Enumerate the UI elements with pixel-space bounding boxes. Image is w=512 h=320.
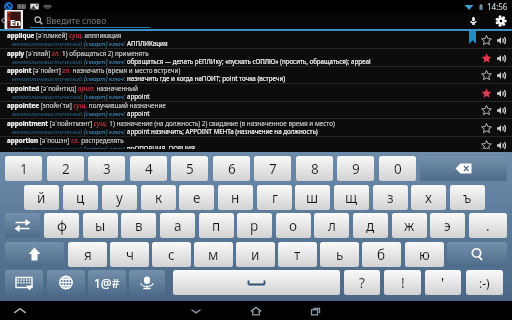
button[interactable]: appoint [ə`пойнт] гл. назначить (время и…: [0, 66, 512, 84]
staticText: мнемолингвистический (смарт) ключ: назна…: [12, 74, 286, 82]
staticText: щ: [345, 189, 358, 207]
button[interactable]: ь: [320, 242, 359, 267]
button[interactable]: Add to favourites: [479, 68, 494, 83]
button[interactable]: 2: [47, 156, 84, 181]
button[interactable]: ъ: [450, 185, 485, 210]
button[interactable]: м: [194, 242, 233, 267]
button[interactable]: 8: [296, 156, 333, 181]
button[interactable]: Change language: [47, 270, 85, 295]
button[interactable]: Add to favourites: [479, 138, 494, 149]
staticText: 6: [228, 160, 236, 178]
button[interactable]: 0: [379, 156, 416, 181]
staticText: appointment [ə`пойнтмэнт] сущ. 1) назнач…: [7, 119, 335, 128]
button[interactable]: щ: [334, 185, 369, 210]
staticText: г: [272, 189, 278, 207]
button[interactable]: 7: [254, 156, 291, 181]
button[interactable]: 1@#: [88, 270, 126, 295]
button[interactable]: е: [179, 185, 214, 210]
button[interactable]: р: [237, 213, 272, 238]
button[interactable]: Add to favourites: [479, 103, 494, 118]
button[interactable]: й: [24, 185, 59, 210]
button[interactable]: п: [199, 213, 234, 238]
button[interactable]: 5: [171, 156, 208, 181]
button[interactable]: х: [411, 185, 446, 210]
button[interactable]: Shift: [5, 242, 64, 267]
button[interactable]: ц: [63, 185, 98, 210]
button[interactable]: 4: [130, 156, 167, 181]
button[interactable]: у: [102, 185, 137, 210]
button[interactable]: д: [353, 213, 388, 238]
button[interactable]: Pronounce word: [494, 138, 509, 149]
button[interactable]: 6: [213, 156, 250, 181]
staticText: !: [401, 274, 405, 292]
button[interactable]: ж: [392, 213, 427, 238]
button[interactable]: Hide keyboard: [5, 270, 43, 295]
button[interactable]: л: [314, 213, 349, 238]
button[interactable]: Введите слово: [34, 12, 512, 29]
button[interactable]: з: [373, 185, 408, 210]
button[interactable]: Dictionary: [4, 12, 24, 29]
button[interactable]: э: [430, 213, 465, 238]
button[interactable]: appointed [ə`пойнтид] прил. назначенный: [0, 84, 512, 102]
button[interactable]: Menu: [12, 303, 28, 319]
button[interactable]: к: [141, 185, 176, 210]
button[interactable]: ш: [295, 185, 330, 210]
button[interactable]: Voice input: [129, 270, 165, 295]
staticText: appointee [эпойн`ти] сущ. получивший наз…: [7, 101, 166, 110]
button[interactable]: о: [276, 213, 311, 238]
button[interactable]: Add to favourites: [479, 33, 494, 48]
button[interactable]: .: [469, 213, 507, 238]
button[interactable]: appointee [эпойн`ти] сущ. получивший наз…: [0, 101, 512, 119]
button[interactable]: ': [425, 270, 461, 295]
button[interactable]: Pronounce word: [494, 68, 509, 83]
button[interactable]: Add to favourites: [479, 86, 494, 101]
button[interactable]: apportion [ə`пошэн] гл. распределять: [0, 136, 512, 149]
button[interactable]: 9: [337, 156, 374, 181]
button[interactable]: Navigate up: [0, 12, 5, 29]
button[interactable]: ы: [83, 213, 118, 238]
staticText: п: [212, 217, 221, 235]
button[interactable]: ф: [44, 213, 79, 238]
button[interactable]: Home: [248, 303, 264, 319]
button[interactable]: Space: [173, 270, 340, 295]
button[interactable]: Pronounce word: [494, 103, 509, 118]
button[interactable]: 1: [5, 156, 42, 181]
button[interactable]: Add to favourites: [479, 121, 494, 136]
button[interactable]: Backspace: [420, 156, 507, 181]
button[interactable]: Search: [447, 242, 507, 267]
button[interactable]: Voice search: [466, 13, 481, 28]
staticText: д: [366, 217, 375, 235]
staticText: е: [193, 189, 201, 207]
button[interactable]: applique [ə`пликей] сущ. аппликация: [0, 31, 512, 49]
button[interactable]: а: [160, 213, 195, 238]
staticText: а: [174, 217, 182, 235]
button[interactable]: ю: [405, 242, 444, 267]
button[interactable]: Pronounce word: [494, 51, 509, 66]
button[interactable]: н: [218, 185, 253, 210]
button[interactable]: ?: [344, 270, 380, 295]
button[interactable]: Pronounce word: [494, 86, 509, 101]
staticText: мнемолингвистический (смарт) ключ: обращ…: [12, 57, 371, 65]
button[interactable]: Pronounce word: [494, 121, 509, 136]
button[interactable]: Pronounce word: [494, 33, 509, 48]
button[interactable]: 3: [88, 156, 125, 181]
button[interactable]: !: [384, 270, 421, 295]
button[interactable]: т: [278, 242, 317, 267]
staticText: 7: [269, 160, 277, 178]
button[interactable]: Settings: [494, 14, 508, 28]
staticText: р: [250, 217, 259, 235]
button[interactable]: appointment [ə`пойнтмэнт] сущ. 1) назнач…: [0, 119, 512, 137]
button[interactable]: б: [362, 242, 401, 267]
button[interactable]: я: [68, 242, 107, 267]
button[interactable]: :-): [466, 270, 503, 295]
button[interactable]: ч: [110, 242, 149, 267]
button[interactable]: apply [ə`плай] гл. 1) обращаться 2) прим…: [0, 49, 512, 67]
button[interactable]: Back: [188, 303, 204, 319]
button[interactable]: Tab: [5, 213, 40, 238]
button[interactable]: и: [236, 242, 275, 267]
button[interactable]: Add to favourites: [479, 51, 494, 66]
button[interactable]: с: [152, 242, 191, 267]
button[interactable]: г: [257, 185, 292, 210]
button[interactable]: Recent apps: [308, 303, 324, 319]
button[interactable]: в: [121, 213, 156, 238]
